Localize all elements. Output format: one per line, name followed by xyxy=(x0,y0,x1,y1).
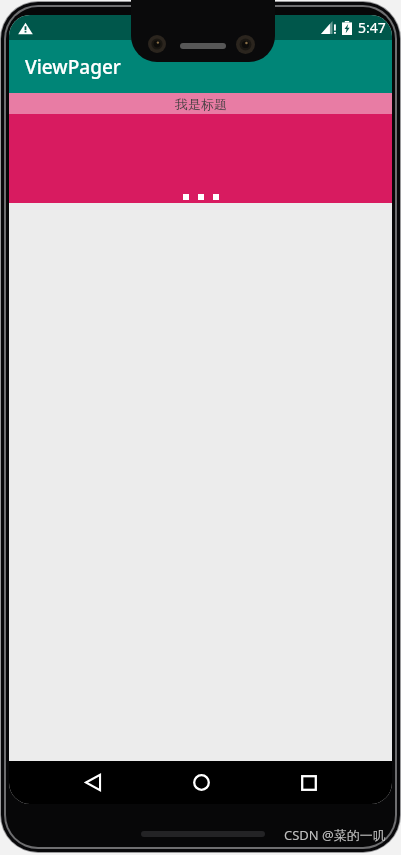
button[interactable]: Back xyxy=(71,761,115,804)
button[interactable]: 我是标题 xyxy=(9,93,392,114)
staticText: 5:47 xyxy=(358,18,386,37)
button[interactable]: Home xyxy=(179,761,223,804)
button[interactable]: ViewPager xyxy=(9,40,392,93)
staticText: ViewPager xyxy=(25,54,121,80)
staticText: 我是标题 xyxy=(175,96,227,112)
staticText: CSDN @菜的一叽 xyxy=(284,826,386,844)
button[interactable]: Page indicator xyxy=(9,114,392,203)
button[interactable]: Recent apps xyxy=(287,761,331,804)
